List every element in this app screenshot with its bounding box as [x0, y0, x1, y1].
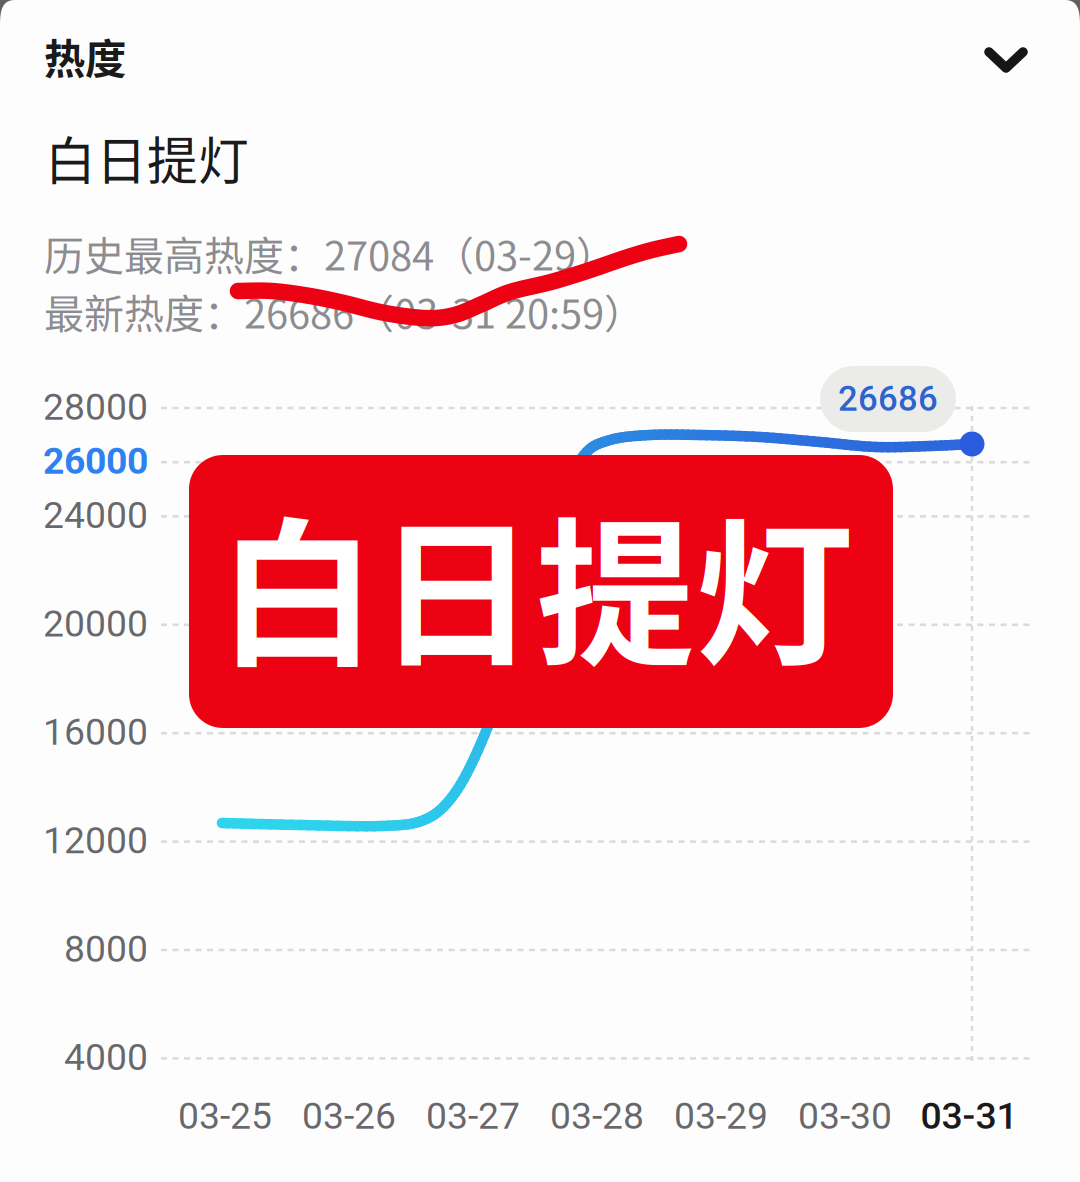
staticText: 历史最高热度：27084（03-29） [44, 224, 616, 282]
staticText: 03-29 [674, 1094, 768, 1138]
staticText: 03-31 [920, 1094, 1017, 1138]
button[interactable]: Collapse section [984, 47, 1028, 73]
staticText: 白日提灯 [45, 121, 249, 194]
staticText: 24000 [43, 493, 148, 537]
staticText: 26000 [43, 439, 148, 483]
staticText: 20000 [43, 602, 148, 645]
staticText: 03-30 [798, 1094, 892, 1138]
staticText: 26686 [838, 379, 938, 419]
staticText: 最新热度：26686（03-31 20:59） [44, 282, 644, 340]
staticText: 4000 [64, 1035, 148, 1079]
staticText: 03-26 [302, 1094, 396, 1138]
staticText: 16000 [43, 710, 148, 754]
staticText: 8000 [64, 927, 148, 971]
staticText: 03-27 [426, 1094, 520, 1138]
staticText: 12000 [43, 819, 148, 862]
staticText: 03-28 [550, 1094, 644, 1138]
staticText: 28000 [43, 385, 148, 429]
staticText: 热度 [44, 26, 126, 86]
staticText: 03-25 [178, 1094, 272, 1138]
staticText: 白日提灯 [218, 469, 854, 698]
